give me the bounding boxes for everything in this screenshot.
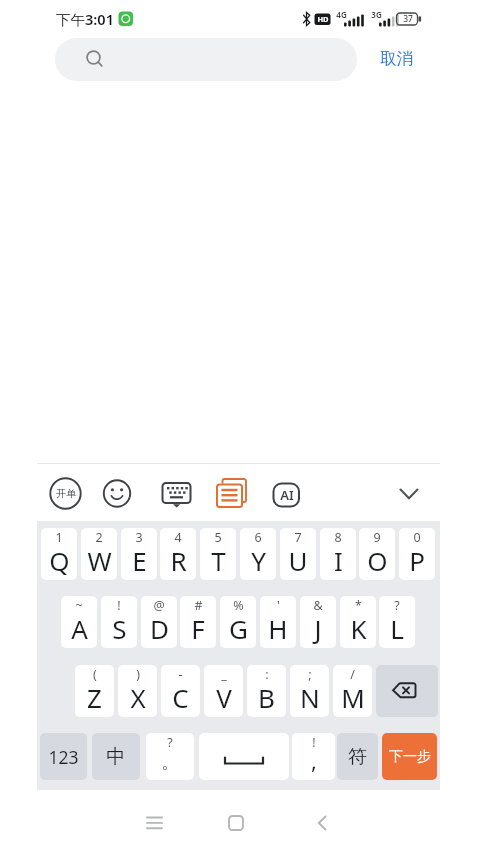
button[interactable]: _ <box>204 665 243 717</box>
button[interactable]: 0 <box>399 528 435 580</box>
button[interactable]: 中 <box>92 733 140 780</box>
staticText: ; <box>308 666 312 683</box>
button[interactable]: 5 <box>200 528 236 580</box>
button[interactable]: ; <box>290 665 329 717</box>
button[interactable] <box>221 808 252 838</box>
staticText: 下午3:01 <box>56 9 114 29</box>
button[interactable] <box>55 38 357 81</box>
staticText: T <box>211 543 226 578</box>
button[interactable]: 6 <box>240 528 276 580</box>
staticText: : <box>265 666 269 683</box>
button[interactable]: ? <box>379 596 415 648</box>
staticText: P <box>409 543 425 578</box>
staticText: / <box>350 666 355 683</box>
staticText: ( <box>93 666 97 683</box>
button[interactable] <box>376 665 438 717</box>
staticText: HD <box>317 14 329 24</box>
staticText: B <box>258 680 275 715</box>
button[interactable]: ( <box>75 665 114 717</box>
staticText: 6 <box>254 529 262 546</box>
staticText: A <box>71 611 88 646</box>
staticText: 4G <box>336 9 347 19</box>
staticText: AI <box>280 486 294 504</box>
staticText: 开单 <box>56 487 76 500</box>
button[interactable]: ? <box>146 733 194 780</box>
button[interactable]: 1 <box>41 528 77 580</box>
button[interactable]: 符 <box>337 733 378 780</box>
button[interactable]: 4 <box>160 528 196 580</box>
staticText: K <box>350 611 367 646</box>
staticText: Q <box>49 543 70 578</box>
staticText: 下一步 <box>389 748 431 766</box>
staticText: 37 <box>403 13 413 25</box>
staticText: G <box>229 611 248 646</box>
button[interactable]: 9 <box>359 528 395 580</box>
button[interactable] <box>215 477 248 509</box>
button[interactable] <box>103 479 131 508</box>
button[interactable]: 取消 <box>373 47 419 69</box>
button[interactable]: 8 <box>320 528 356 580</box>
button[interactable]: 7 <box>280 528 316 580</box>
button[interactable]: 2 <box>81 528 117 580</box>
staticText: J <box>314 611 322 646</box>
staticText: - <box>178 666 183 683</box>
button[interactable]: ! <box>101 596 137 648</box>
staticText: , <box>311 745 317 775</box>
staticText: 8 <box>334 529 342 546</box>
button[interactable]: ~ <box>61 596 97 648</box>
button[interactable]: ) <box>118 665 157 717</box>
button[interactable] <box>50 478 81 509</box>
button[interactable]: ' <box>260 596 296 648</box>
button[interactable]: 下一步 <box>382 733 437 780</box>
staticText: ? <box>394 597 400 614</box>
staticText: _ <box>221 666 227 683</box>
staticText: 9 <box>373 529 381 546</box>
button[interactable] <box>139 808 170 838</box>
staticText: 0 <box>413 529 421 546</box>
button[interactable]: % <box>220 596 256 648</box>
staticText: 3 <box>135 529 143 546</box>
staticText: X <box>130 680 146 715</box>
button[interactable]: 123 <box>40 733 87 780</box>
button[interactable]: & <box>300 596 336 648</box>
staticText: 1 <box>55 529 63 546</box>
staticText: 2 <box>95 529 103 546</box>
staticText: @ <box>153 597 165 614</box>
staticText: ' <box>277 597 280 614</box>
staticText: F <box>191 611 205 646</box>
button[interactable]: * <box>340 596 376 648</box>
staticText: U <box>288 543 308 578</box>
button[interactable] <box>199 733 289 780</box>
staticText: Y <box>251 543 266 578</box>
staticText: O <box>367 543 388 578</box>
staticText: 取消 <box>380 48 413 69</box>
button[interactable]: 3 <box>121 528 157 580</box>
button[interactable] <box>307 808 338 838</box>
staticText: Z <box>87 680 102 715</box>
staticText: ! <box>312 734 316 751</box>
button[interactable]: / <box>333 665 372 717</box>
staticText: 123 <box>48 745 79 769</box>
button[interactable]: : <box>247 665 286 717</box>
button[interactable]: # <box>180 596 216 648</box>
staticText: L <box>390 611 404 646</box>
staticText: R <box>170 543 187 578</box>
staticText: # <box>194 597 203 614</box>
button[interactable]: ! <box>292 733 335 780</box>
staticText: * <box>355 597 362 614</box>
staticText: 5 <box>214 529 222 546</box>
staticText: C <box>172 680 189 715</box>
staticText: S <box>112 611 127 646</box>
staticText: ~ <box>75 597 83 614</box>
button[interactable] <box>396 482 422 507</box>
staticText: 3G <box>371 9 382 19</box>
staticText: 4 <box>174 529 182 546</box>
staticText: ! <box>117 597 121 614</box>
button[interactable]: @ <box>141 596 177 648</box>
button[interactable]: - <box>161 665 200 717</box>
staticText: M <box>341 680 365 715</box>
button[interactable] <box>272 482 300 507</box>
button[interactable] <box>160 479 191 508</box>
staticText: D <box>150 611 169 646</box>
staticText: V <box>216 680 232 715</box>
